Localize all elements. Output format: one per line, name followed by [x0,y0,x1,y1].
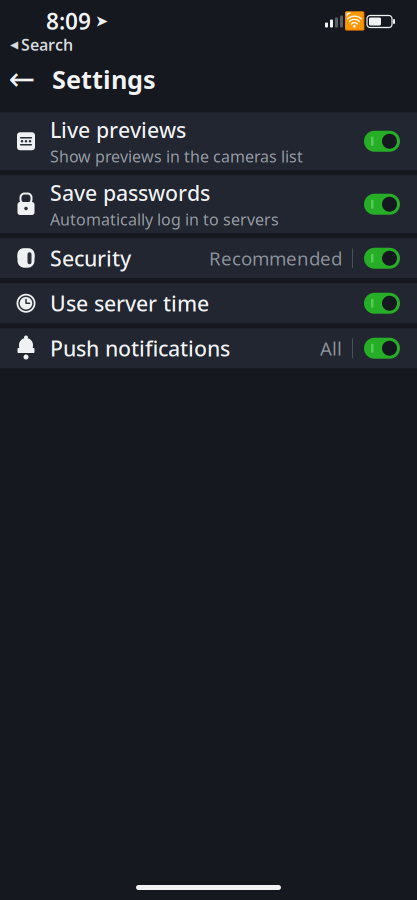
staticText: ◀ [10,39,18,51]
staticText: Live previews [50,115,186,144]
staticText: 8:09 [46,6,91,36]
button[interactable]: Save passwords [0,175,417,233]
staticText: Search [21,34,73,55]
staticText: ← [8,61,35,97]
staticText: 🛜 [344,11,366,31]
staticText: Recommended [209,246,342,271]
button[interactable]: Live previews [0,112,417,170]
staticText: Security [50,244,131,272]
staticText: All [320,336,342,361]
staticText: ➤ [95,12,108,30]
staticText: Use server time [50,289,209,317]
button[interactable]: Back [0,57,44,101]
button[interactable]: Security [0,238,417,278]
button[interactable]: Use server time [0,283,417,323]
staticText: Show previews in the cameras list [50,146,303,167]
staticText: Push notifications [50,334,230,362]
staticText: Settings [52,62,156,96]
button[interactable]: Push notifications [0,328,417,368]
staticText: Automatically log in to servers [50,209,279,230]
staticText: Save passwords [50,178,210,207]
